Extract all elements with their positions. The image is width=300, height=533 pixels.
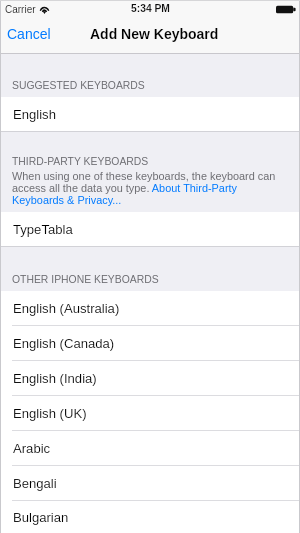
staticText: Carrier	[5, 4, 36, 15]
button[interactable]: TypeTabla	[0, 212, 300, 246]
staticText: English	[13, 107, 56, 122]
staticText: Cancel	[7, 26, 51, 42]
button[interactable]: Bulgarian	[0, 501, 300, 533]
staticText: When using one of these keyboards, the k…	[12, 170, 278, 206]
staticText: TypeTabla	[13, 222, 73, 237]
staticText: SUGGESTED KEYBOARDS	[12, 80, 145, 92]
button[interactable]: Arabic	[0, 431, 300, 465]
staticText: English (UK)	[13, 406, 87, 421]
other: Wi-Fi	[39, 5, 50, 14]
other: Battery	[276, 5, 296, 14]
staticText: Add New Keyboard	[90, 26, 219, 42]
staticText: Arabic	[13, 441, 51, 456]
button[interactable]: English (UK)	[0, 396, 300, 430]
button[interactable]: English (Australia)	[0, 291, 300, 325]
staticText: Bengali	[13, 476, 57, 491]
staticText: OTHER IPHONE KEYBOARDS	[12, 274, 159, 286]
button[interactable]: English	[0, 97, 300, 131]
staticText: 5:34 PM	[131, 3, 170, 15]
staticText: English (India)	[13, 371, 97, 386]
staticText: Bulgarian	[13, 510, 69, 525]
button[interactable]: Cancel	[0, 18, 58, 50]
staticText: English (Canada)	[13, 336, 115, 351]
staticText: English (Australia)	[13, 301, 120, 316]
button[interactable]: English (Canada)	[0, 326, 300, 360]
staticText: THIRD-PARTY KEYBOARDS	[12, 156, 149, 168]
button[interactable]: English (India)	[0, 361, 300, 395]
button[interactable]: Bengali	[0, 466, 300, 500]
